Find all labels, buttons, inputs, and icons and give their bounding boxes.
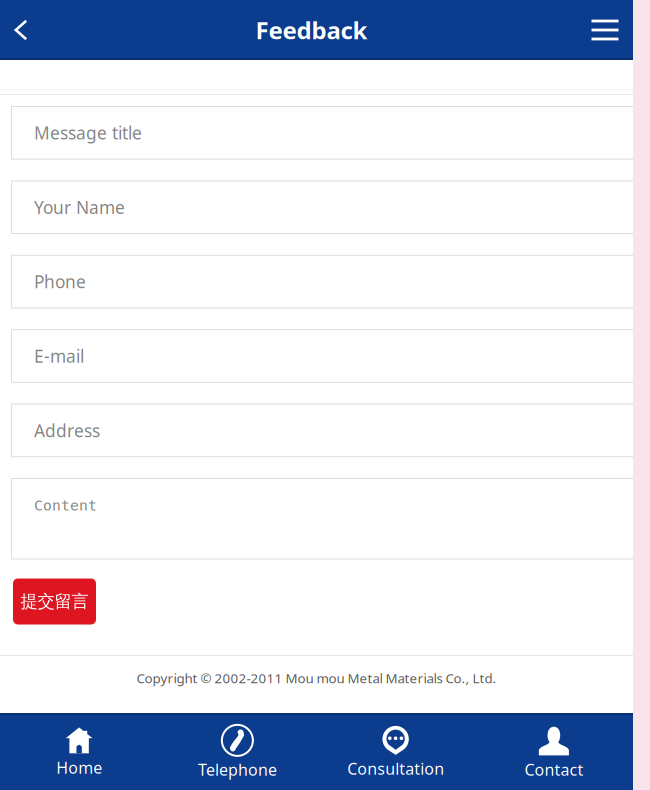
staticText: Copyright © 2002-2011 Mou mou Metal Mate… <box>136 669 496 687</box>
button[interactable]: Content <box>11 478 633 559</box>
staticText: E-mail <box>34 344 84 367</box>
button[interactable]: Phone <box>11 255 633 308</box>
staticText: Address <box>34 419 100 442</box>
button[interactable]: Back <box>0 0 42 60</box>
button[interactable]: E-mail <box>11 329 633 383</box>
button[interactable]: Address <box>11 404 633 457</box>
button[interactable]: Contact <box>475 715 633 790</box>
button[interactable]: Your Name <box>11 180 633 234</box>
staticText: Telephone <box>198 759 277 780</box>
button[interactable]: Menu <box>584 0 626 60</box>
button[interactable]: Home <box>0 715 158 790</box>
staticText: Content <box>34 497 97 514</box>
button[interactable]: 提交留言 <box>13 578 96 624</box>
button[interactable]: Message title <box>11 106 633 160</box>
staticText: Consultation <box>347 758 444 779</box>
staticText: Your Name <box>34 196 125 219</box>
staticText: Contact <box>524 759 583 780</box>
button[interactable]: Consultation <box>316 715 475 790</box>
button[interactable]: Telephone <box>158 715 316 790</box>
staticText: 提交留言 <box>20 591 88 612</box>
staticText: Phone <box>34 270 86 293</box>
staticText: Message title <box>34 121 142 144</box>
staticText: Home <box>56 757 102 778</box>
staticText: Feedback <box>255 14 367 46</box>
